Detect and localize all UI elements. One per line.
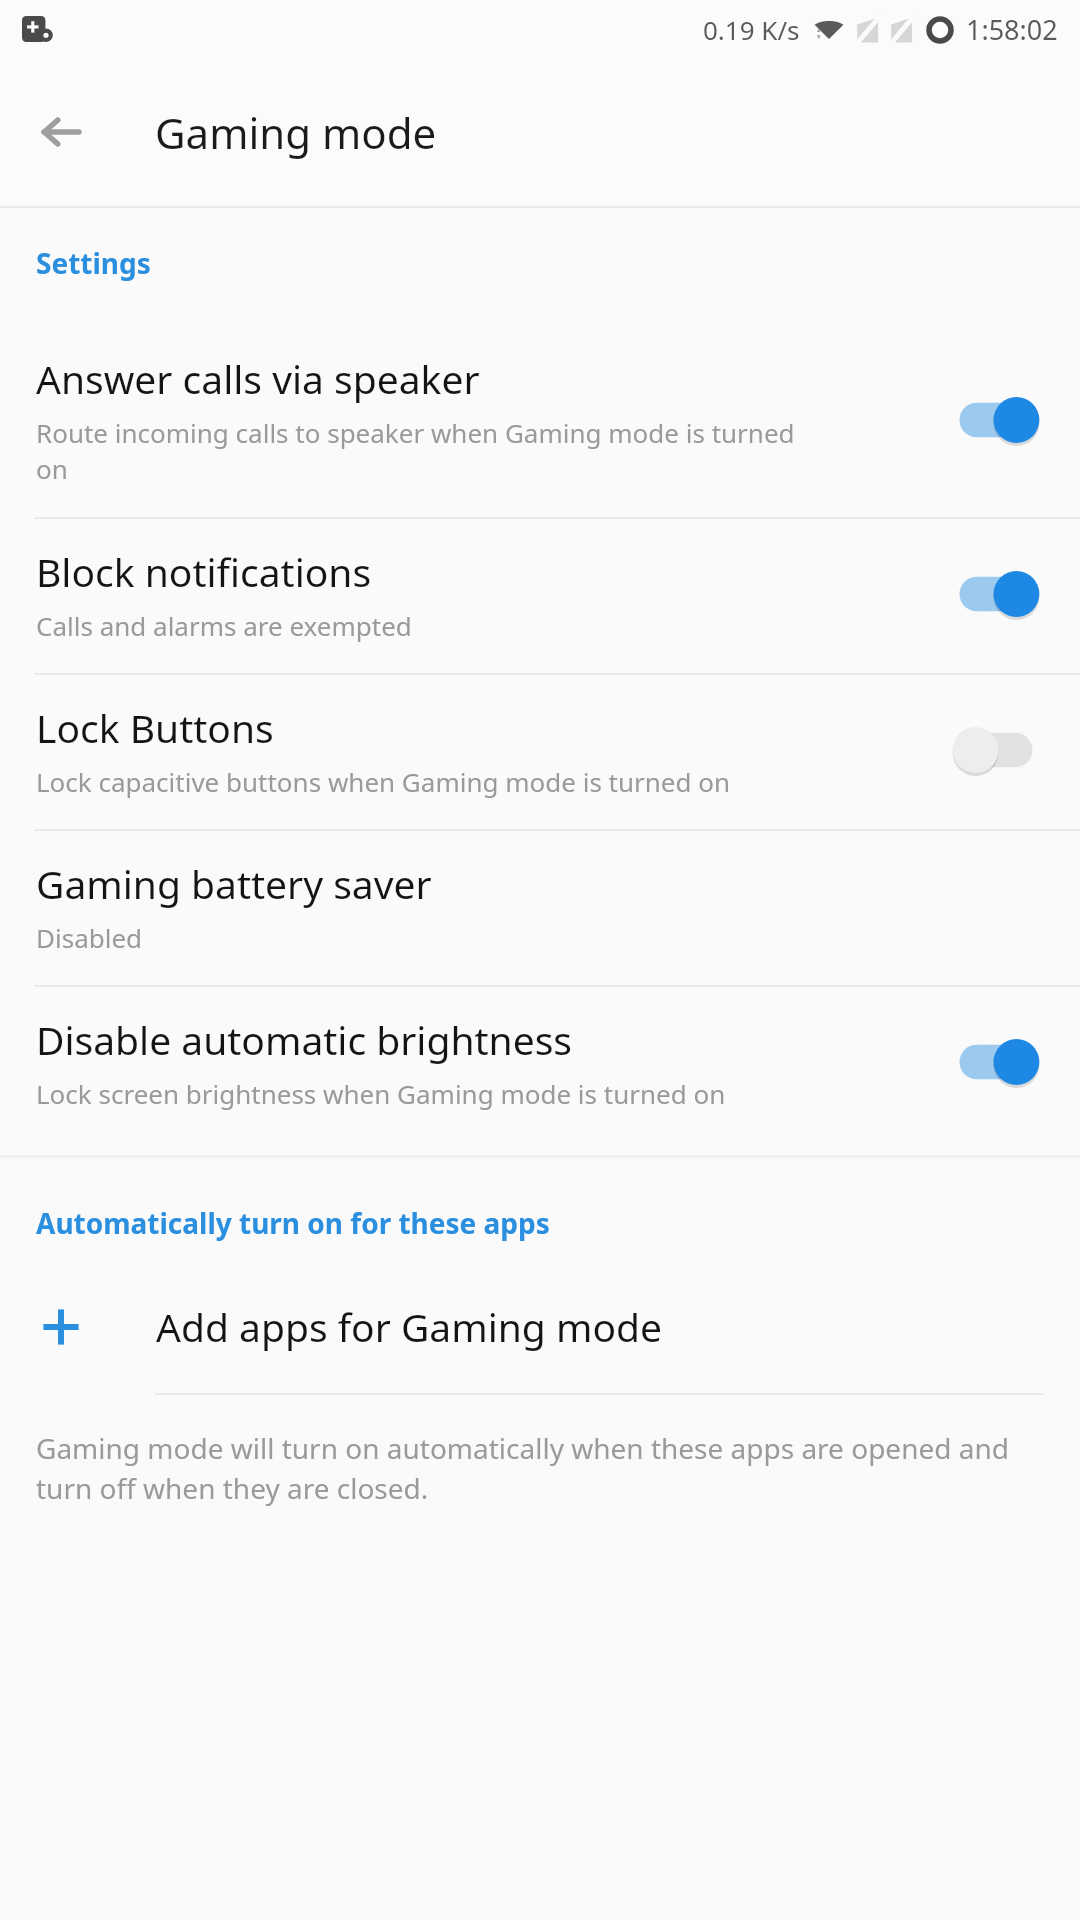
staticText: Disable automatic brightness	[36, 1013, 573, 1066]
staticText: Lock screen brightness when Gaming mode …	[36, 1076, 726, 1111]
staticText: 0.19 K/s	[703, 12, 800, 47]
button[interactable]: Toggle on	[948, 389, 1044, 451]
button[interactable]: Add apps for Gaming mode	[0, 1300, 1080, 1395]
staticText: Answer calls via speaker	[36, 352, 480, 405]
button[interactable]: Gaming battery saver	[0, 831, 1080, 985]
staticText: Lock Buttons	[36, 701, 274, 754]
staticText: Settings	[36, 244, 151, 282]
button[interactable]: Lock Buttons	[0, 675, 1080, 829]
staticText: Calls and alarms are exempted	[36, 608, 412, 643]
staticText: Gaming battery saver	[36, 857, 432, 910]
staticText: Disabled	[36, 920, 143, 955]
staticText: Gaming mode will turn on automatically w…	[36, 1429, 1009, 1508]
staticText: Route incoming calls to speaker when Gam…	[36, 415, 795, 487]
button[interactable]: Block notifications	[0, 519, 1080, 673]
staticText: 1:58:02	[966, 11, 1058, 48]
button[interactable]: Toggle on	[948, 1031, 1044, 1093]
button[interactable]: Toggle off	[948, 719, 1044, 781]
button[interactable]: Answer calls via speaker	[0, 326, 1080, 517]
staticText: Lock capacitive buttons when Gaming mode…	[36, 764, 731, 799]
button[interactable]: Toggle on	[948, 563, 1044, 625]
staticText: Add apps for Gaming mode	[156, 1300, 663, 1353]
staticText: Gaming mode	[155, 104, 437, 161]
staticText: Automatically turn on for these apps	[36, 1204, 550, 1242]
staticText: Block notifications	[36, 545, 372, 598]
button[interactable]: Disable automatic brightness	[0, 987, 1080, 1141]
button[interactable]: Back	[30, 101, 92, 163]
